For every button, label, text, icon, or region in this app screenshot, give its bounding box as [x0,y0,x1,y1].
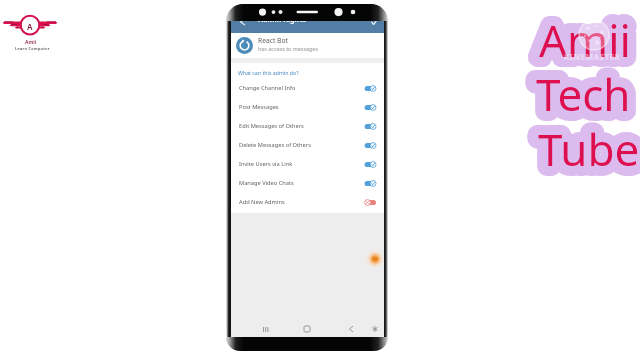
staticText: Post Messages [239,103,279,111]
staticText: A [27,21,33,32]
staticText: Tech [536,64,631,124]
staticText: has access to messages [258,45,318,52]
button[interactable]: Add New Admins [231,193,384,212]
button[interactable]: Recent apps [258,322,272,336]
staticText: Amii [538,10,630,70]
button[interactable]: Done [369,21,379,27]
button[interactable]: Back [231,21,384,33]
staticText: Tube [537,119,639,179]
button[interactable]: Invite Users via Link [231,155,384,174]
button[interactable]: Post Messages [231,98,384,117]
staticText: Tech [535,64,630,124]
staticText: Edit Messages of Others [239,122,304,130]
button[interactable]: Assistant [368,322,382,336]
button[interactable]: Back [237,21,247,27]
staticText: Tube [537,119,639,179]
button[interactable]: Change Channel Info [231,79,384,98]
staticText: Learn Computer [15,46,50,51]
staticText: React Bot [258,36,288,45]
staticText: Tech [535,64,630,124]
staticText: Add New Admins [239,198,285,206]
staticText: Invite Users via Link [239,160,293,168]
staticText: Manage Video Chats [239,179,294,187]
staticText: Amii [538,10,630,70]
staticText: Amii [538,10,630,70]
button[interactable]: Back [344,322,358,336]
staticText: Delete Messages of Others [239,141,311,149]
button[interactable]: Edit Messages of Others [231,117,384,136]
staticText: Tube [537,119,639,179]
button[interactable]: Manage Video Chats [231,174,384,193]
staticText: Tech [535,64,630,124]
staticText: What can this admin do? [238,69,299,76]
staticText: Tube [538,119,640,179]
staticText: Change Channel Info [239,84,296,92]
button[interactable]: Home [300,322,314,336]
staticText: Admin Rights [258,21,307,24]
staticText: KINEMASTER [564,51,621,62]
staticText: Amii [539,10,631,70]
staticText: Amii [25,39,37,46]
button[interactable]: Delete Messages of Others [231,136,384,155]
button[interactable]: Add [364,248,384,270]
